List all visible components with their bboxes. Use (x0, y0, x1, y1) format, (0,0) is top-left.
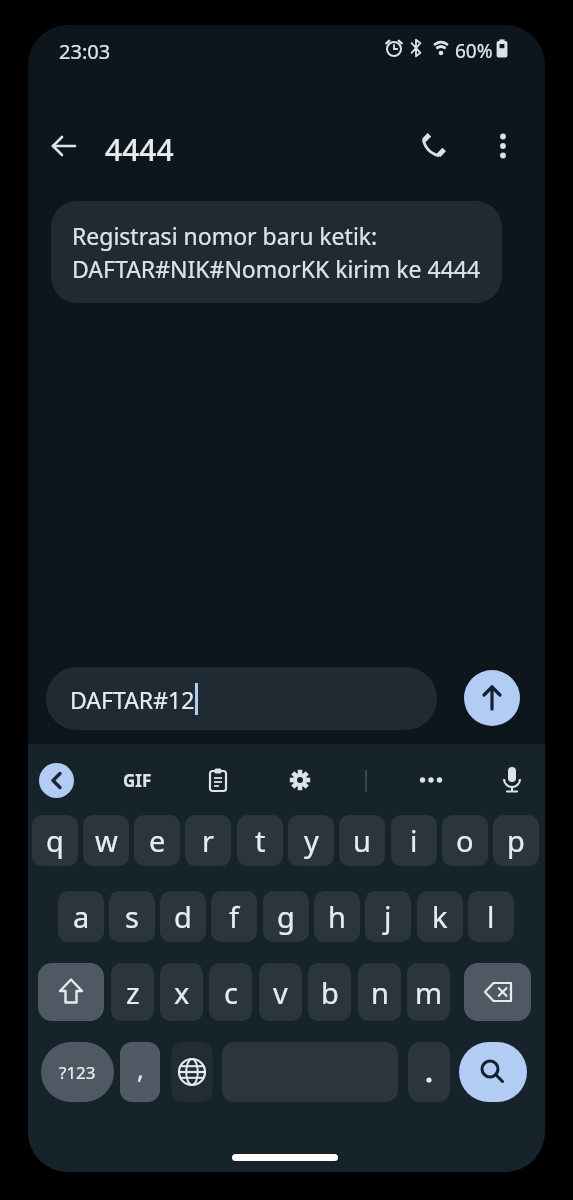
button[interactable]: DAFTAR#12 (46, 667, 437, 730)
staticText: e (149, 821, 166, 860)
button[interactable]: b (308, 963, 351, 1021)
staticText: w (95, 821, 118, 860)
staticText: DAFTAR#12 (70, 684, 195, 715)
staticText: y (304, 821, 319, 860)
button[interactable]: r (185, 815, 231, 866)
button[interactable]: e (134, 815, 180, 866)
button[interactable] (481, 124, 525, 168)
button[interactable]: f (211, 891, 257, 942)
staticText: v (273, 973, 288, 1012)
button[interactable] (490, 758, 534, 802)
staticText: j (384, 897, 392, 936)
staticText: h (328, 897, 346, 936)
staticText: m (415, 973, 443, 1012)
staticText: f (229, 897, 239, 936)
button[interactable] (38, 963, 104, 1021)
staticText: g (277, 897, 295, 936)
staticText: x (174, 973, 190, 1012)
staticText: 60% (455, 38, 493, 64)
staticText: , (137, 1052, 144, 1086)
staticText: b (321, 973, 339, 1012)
button[interactable]: c (209, 963, 252, 1021)
staticText: d (174, 897, 192, 936)
staticText: 23:03 (59, 38, 111, 64)
button[interactable]: y (288, 815, 334, 866)
button[interactable]: j (365, 891, 411, 942)
button[interactable] (171, 1042, 213, 1102)
button[interactable]: v (259, 963, 302, 1021)
button[interactable]: d (160, 891, 206, 942)
staticText: l (487, 897, 495, 936)
button[interactable]: g (263, 891, 309, 942)
button[interactable]: i (391, 815, 437, 866)
staticText: a (73, 897, 90, 936)
button[interactable]: s (109, 891, 155, 942)
staticText: t (255, 821, 266, 860)
button[interactable] (459, 1042, 527, 1102)
staticText: p (507, 821, 525, 860)
button[interactable] (196, 758, 240, 802)
staticText: c (224, 973, 238, 1012)
button[interactable]: k (417, 891, 463, 942)
button[interactable] (39, 763, 74, 798)
staticText: n (371, 973, 389, 1012)
button[interactable]: n (358, 963, 401, 1021)
button[interactable]: q (32, 815, 78, 866)
staticText: z (126, 973, 140, 1012)
staticText: k (432, 897, 448, 936)
button[interactable]: x (160, 963, 203, 1021)
button[interactable]: ?123 (41, 1042, 114, 1102)
button[interactable]: a (58, 891, 104, 942)
staticText: 4444 (105, 129, 174, 165)
button[interactable] (412, 124, 456, 168)
button[interactable]: p (493, 815, 539, 866)
button[interactable] (464, 670, 520, 726)
button[interactable]: z (111, 963, 154, 1021)
button[interactable]: o (442, 815, 488, 866)
button[interactable] (408, 1042, 450, 1102)
staticText: i (410, 821, 418, 860)
staticText: ?123 (59, 1061, 96, 1084)
staticText: o (456, 821, 474, 860)
button[interactable] (42, 124, 86, 168)
button[interactable]: l (468, 891, 514, 942)
staticText: q (46, 821, 64, 860)
button[interactable] (464, 963, 531, 1021)
button[interactable] (278, 758, 322, 802)
button[interactable]: , (120, 1042, 160, 1102)
button[interactable] (409, 758, 453, 802)
button[interactable]: h (314, 891, 360, 942)
staticText: s (125, 897, 139, 936)
staticText: r (202, 821, 214, 860)
staticText: u (353, 821, 371, 860)
button[interactable]: m (407, 963, 450, 1021)
button[interactable]: u (339, 815, 385, 866)
staticText: GIF (123, 769, 152, 792)
button[interactable]: w (83, 815, 129, 866)
staticText: Registrasi nomor baru ketik: DAFTAR#NIK#… (72, 220, 481, 285)
button[interactable]: t (237, 815, 283, 866)
